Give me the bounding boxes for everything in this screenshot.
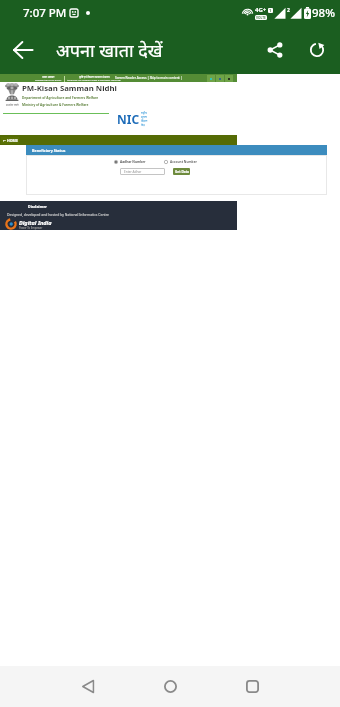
staticText: ← HOME [3, 138, 18, 143]
staticText: Digital India [19, 219, 52, 226]
staticText: MINISTRY OF AGRICULTURE & FARMERS WELFAR… [67, 79, 121, 82]
button[interactable]: Aadhar Number [114, 160, 146, 164]
button[interactable]: Refresh [296, 29, 338, 71]
button[interactable]: Account Number [164, 160, 197, 164]
staticText: Department of Agriculture and Farmers We… [22, 96, 99, 100]
button[interactable]: ← HOME [1, 137, 19, 144]
staticText: 98% [312, 5, 335, 21]
button[interactable]: Accessibility option [207, 75, 215, 82]
staticText: Aadhar Number [120, 160, 146, 164]
button[interactable]: Recent apps [230, 666, 274, 707]
staticText: 2 [287, 7, 290, 14]
button[interactable]: Accessibility option [216, 75, 224, 82]
button[interactable]: Enter Adhar [120, 168, 165, 175]
staticText: Get Data [175, 170, 189, 174]
staticText: Account Number [170, 160, 197, 164]
staticText: सत्यमेव जयते [6, 103, 19, 107]
staticText: GOVERNMENT OF INDIA [35, 79, 62, 82]
staticText: कृषि एवं किसान कल्याण मंत्रालय [79, 75, 110, 79]
staticText: Power To Empower [19, 226, 43, 230]
button[interactable]: Accessibility option [225, 75, 233, 82]
staticText: 1 [269, 8, 272, 13]
staticText: Disclaimer [28, 204, 47, 209]
button[interactable]: Share [254, 29, 296, 71]
staticText: Beneficiary Status [32, 148, 66, 153]
button[interactable]: Get Data [173, 168, 190, 175]
staticText: अपना खाता देखें [56, 38, 163, 63]
staticText: भारत सरकार [42, 75, 55, 79]
button[interactable]: Back [66, 666, 110, 707]
staticText: Enter Adhar [124, 170, 142, 174]
staticText: 4G+ [255, 6, 267, 14]
staticText: PM-Kisan Samman Nidhi [22, 83, 117, 94]
staticText: सूचना [141, 115, 147, 119]
button[interactable]: Home [148, 666, 192, 707]
staticText: विज्ञान [141, 119, 148, 123]
staticText: 7:07 PM [23, 5, 67, 21]
staticText: Ministry of Agriculture & Farmers Welfar… [22, 103, 89, 107]
staticText: NIC [117, 111, 140, 127]
staticText: केंद्र [141, 123, 145, 127]
staticText: Screen Reader Access | Skip to main cont… [115, 76, 183, 80]
staticText: राष्ट्रीय [141, 111, 147, 115]
button[interactable]: Back [0, 27, 46, 73]
staticText: VOLTE [256, 16, 266, 20]
staticText: Designed, developed and hosted by Nation… [7, 212, 109, 217]
